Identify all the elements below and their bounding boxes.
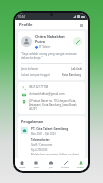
button[interactable]: Data (29, 158, 43, 171)
button[interactable]: Menu (78, 22, 84, 28)
staticText: Rp 4.700.000 (31, 148, 48, 152)
button[interactable]: Jl.Pratiwi Barat no. 70 Ichayani Kota, A… (21, 99, 82, 111)
staticText: chitranbhdfras@gmail.com (29, 92, 65, 96)
button[interactable]: 082132177708 (21, 85, 82, 90)
staticText: Profile (77, 166, 84, 169)
staticText: Profile (19, 22, 33, 28)
staticText: Job (49, 166, 53, 169)
staticText: Jenis kelamin (21, 67, 71, 71)
staticText: Kota Bandung (62, 73, 82, 77)
staticText: Data (34, 166, 39, 169)
staticText: Product (61, 166, 70, 169)
staticText: Melakukan canvasing, follow-up client (31, 153, 79, 155)
staticText: Chitra Nababhat Putra (35, 34, 73, 44)
button[interactable]: Job (43, 158, 58, 171)
staticText: Laki-laki (71, 67, 82, 71)
staticText: "Saya adalah orang yang sangat antusias … (21, 52, 77, 60)
staticText: Pengalaman (21, 119, 44, 124)
staticText: PT. Cita Talent Gemilang (31, 127, 69, 131)
button[interactable]: PT. Cita Talent Gemilang (21, 127, 82, 155)
staticText: Home (19, 166, 26, 169)
staticText: 082132177708 (29, 85, 49, 89)
button[interactable]: Profile (73, 158, 88, 171)
button[interactable]: chitranbhdfras@gmail.com (21, 92, 82, 97)
staticText: 10:24 (18, 15, 25, 19)
button[interactable]: Edit profile (73, 37, 82, 46)
button[interactable]: Home (15, 158, 29, 171)
button[interactable]: Product (58, 158, 73, 171)
staticText: IT Talent (39, 45, 51, 49)
staticText: Staff / Consumer (31, 143, 53, 147)
staticText: Mar 2021 - Okt 2023 (31, 132, 56, 136)
staticText: Lokasi tempat tinggal (21, 73, 62, 77)
staticText: Telemarketer (31, 138, 50, 142)
staticText: Jl.Pratiwi Barat no. 70 Ichayani Kota, A… (29, 99, 82, 111)
